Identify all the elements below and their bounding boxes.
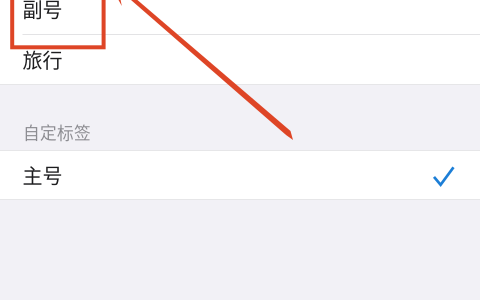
button[interactable]: 副号 <box>0 0 480 34</box>
staticText: 自定标签 <box>23 120 91 144</box>
button[interactable]: 主号 <box>0 151 480 199</box>
staticText: 副号 <box>22 0 62 23</box>
staticText: 旅行 <box>22 45 62 74</box>
staticText: 主号 <box>22 160 62 189</box>
button[interactable]: 旅行 <box>0 35 480 84</box>
